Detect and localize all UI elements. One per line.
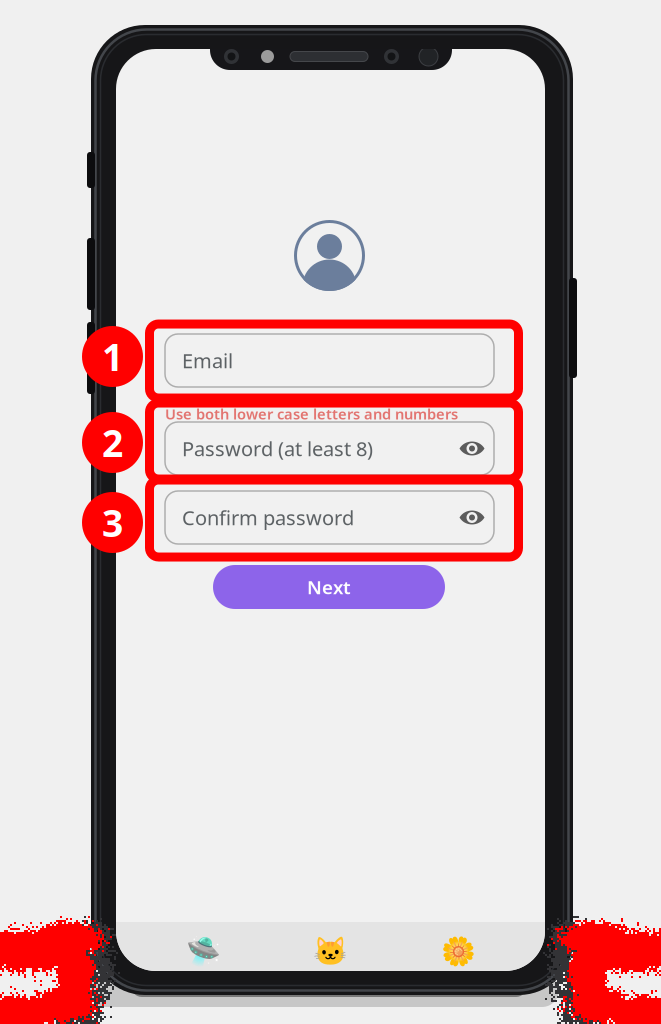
staticText: 🛸 [185, 935, 220, 967]
staticText: Confirm password [182, 504, 354, 531]
staticText: 1 [102, 332, 123, 381]
button[interactable]: Explore [139, 922, 267, 971]
button[interactable]: Show password [450, 426, 494, 470]
staticText: 3 [102, 498, 123, 547]
button[interactable]: Show password [450, 495, 494, 539]
staticText: Email [182, 347, 233, 374]
button[interactable]: Next [213, 565, 445, 609]
staticText: Next [307, 575, 351, 599]
staticText: 🌼 [440, 935, 475, 967]
button[interactable]: Pets [267, 922, 394, 971]
staticText: 🐱 [313, 935, 348, 967]
staticText: 2 [102, 418, 123, 467]
staticText: Password (at least 8) [182, 435, 373, 462]
button[interactable]: Garden [394, 922, 522, 971]
staticText: Use both lower case letters and numbers [165, 404, 458, 423]
